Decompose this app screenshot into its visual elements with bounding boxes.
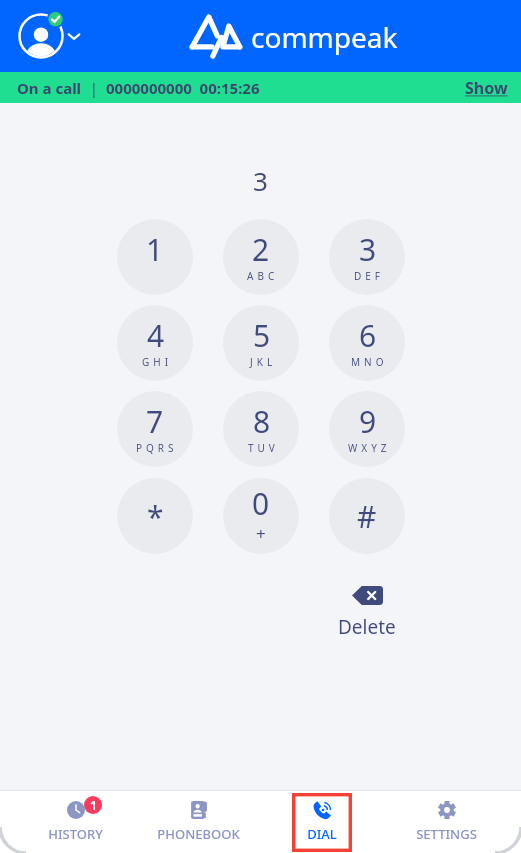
staticText: GHI [142, 355, 173, 369]
button[interactable]: 4 [117, 305, 193, 381]
button[interactable]: 7 [117, 391, 193, 467]
button[interactable]: 1 [117, 219, 193, 295]
staticText: PQRS [136, 441, 178, 455]
staticText: Delete [338, 614, 396, 640]
staticText: DEF [354, 269, 385, 283]
staticText: ABC [247, 269, 279, 283]
staticText: 6 [359, 315, 377, 356]
staticText: * [147, 496, 164, 537]
staticText: 1 [90, 797, 97, 813]
staticText: # [357, 496, 377, 537]
staticText: 5 [253, 315, 271, 356]
staticText: Show [465, 77, 508, 99]
staticText: 9 [359, 401, 377, 442]
button[interactable]: # [329, 478, 405, 554]
staticText: TUV [248, 441, 279, 455]
button[interactable]: DIAL [292, 793, 352, 852]
staticText: WXYZ [348, 441, 391, 455]
staticText: 8 [253, 401, 271, 442]
button[interactable]: PHONEBOOK [143, 793, 253, 852]
button[interactable]: 5 [223, 305, 299, 381]
button[interactable]: 3 [329, 219, 405, 295]
staticText: JKL [250, 355, 277, 369]
staticText: 7 [146, 401, 164, 442]
staticText: 2 [252, 229, 270, 270]
button[interactable]: Show [452, 73, 521, 103]
staticText: commpeak [251, 18, 398, 56]
button[interactable]: 8 [223, 391, 299, 467]
staticText: 0000000000 00:15:26 [106, 78, 260, 98]
button[interactable]: * [117, 478, 193, 554]
staticText: + [256, 522, 266, 545]
staticText: 4 [147, 315, 165, 356]
button[interactable]: 2 [223, 219, 299, 295]
staticText: 3 [359, 229, 377, 270]
button[interactable]: 9 [329, 391, 405, 467]
staticText: PHONEBOOK [157, 825, 240, 843]
button[interactable]: SETTINGS [391, 793, 501, 852]
staticText: DIAL [307, 825, 337, 843]
staticText: SETTINGS [416, 825, 477, 843]
staticText: | [82, 78, 106, 98]
staticText: 3 [253, 163, 268, 198]
button[interactable]: 1 [20, 793, 130, 852]
staticText: On a call [17, 78, 82, 98]
staticText: 1 [146, 229, 164, 270]
button[interactable]: 6 [329, 305, 405, 381]
staticText: HISTORY [48, 825, 103, 843]
staticText: 0 [252, 483, 270, 524]
staticText: MNO [351, 355, 388, 369]
button[interactable]: Delete [314, 586, 420, 640]
button[interactable] [13, 8, 85, 64]
button[interactable]: 0 [223, 478, 299, 554]
